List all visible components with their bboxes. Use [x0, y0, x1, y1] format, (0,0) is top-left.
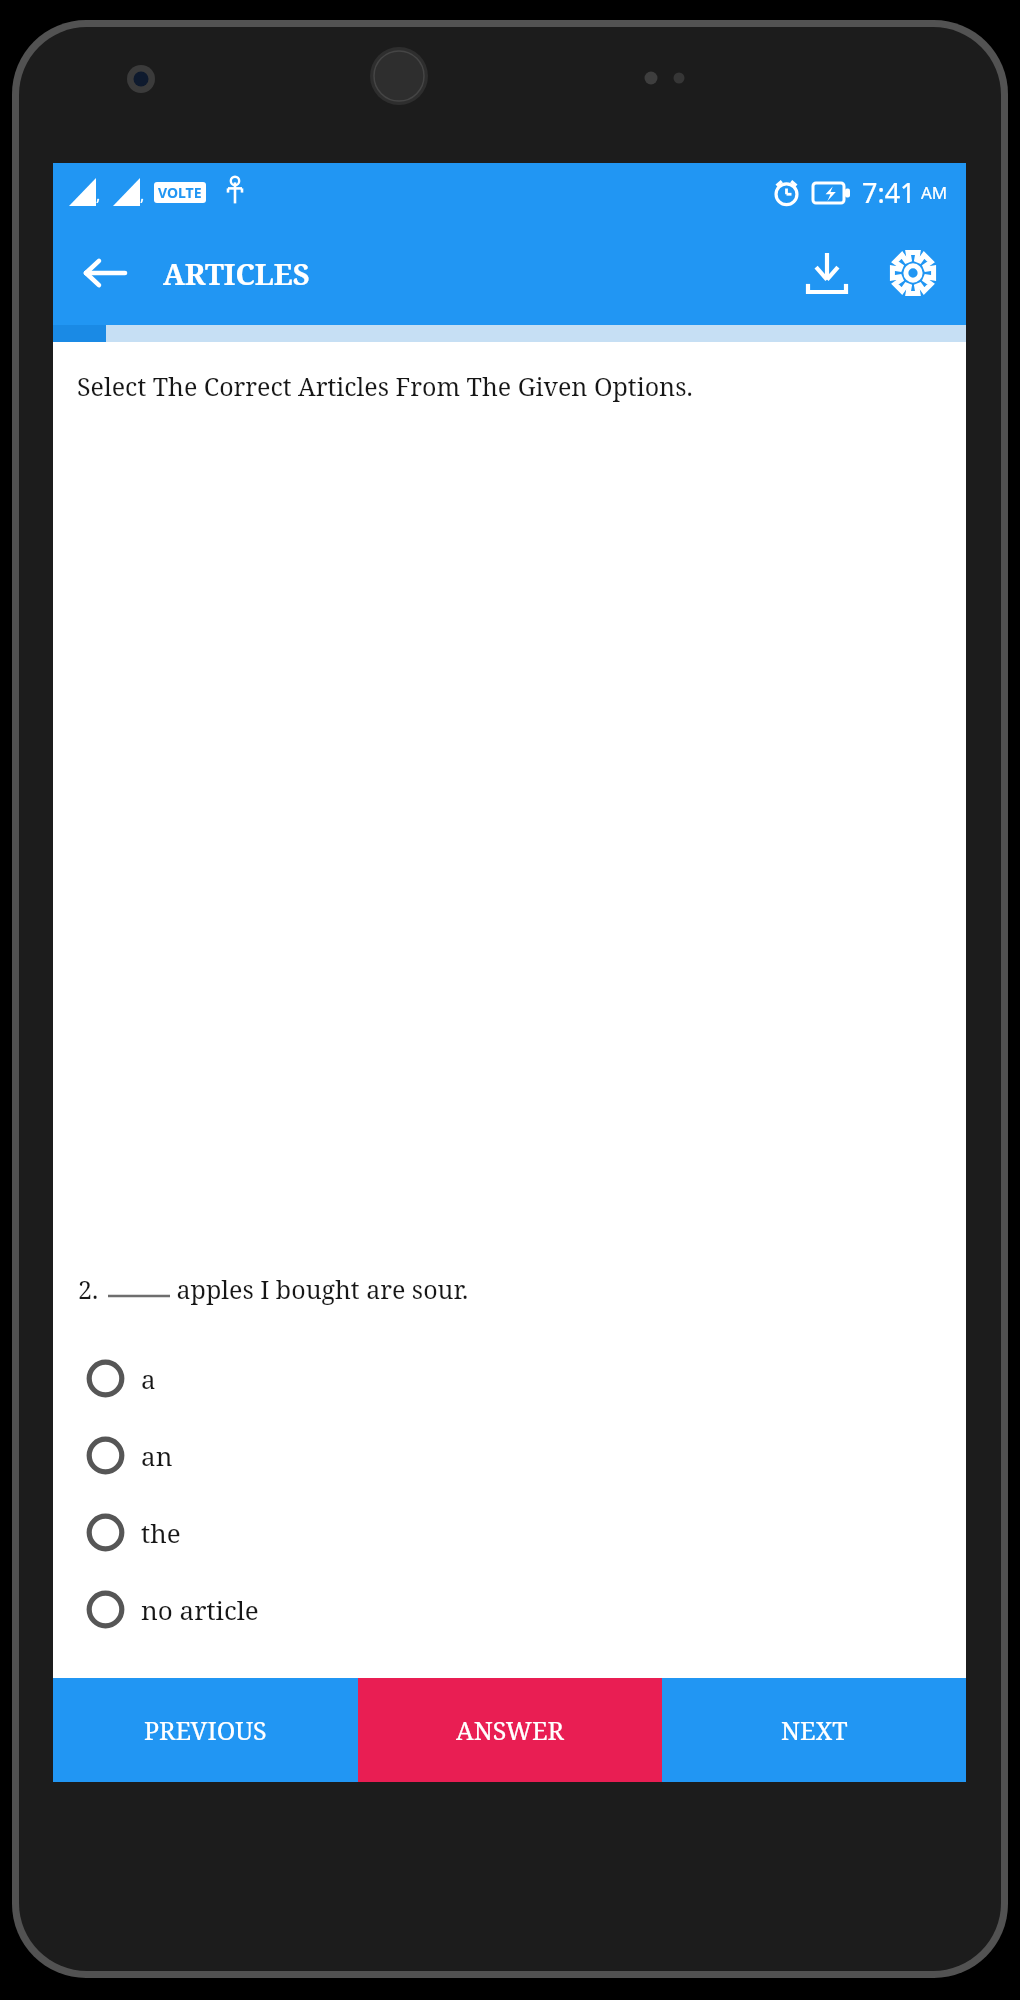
button[interactable]: an [53, 1417, 966, 1494]
button[interactable]: Back [67, 236, 141, 310]
staticText: 2. [78, 1272, 99, 1306]
staticText: apples I bought are sour. [170, 1272, 469, 1306]
staticText: no article [141, 1592, 259, 1627]
staticText: VOLTE [158, 183, 202, 202]
button[interactable]: Download [788, 234, 866, 312]
staticText: AM [921, 181, 948, 204]
staticText: an [141, 1438, 173, 1473]
staticText: 7:41 [862, 174, 916, 211]
staticText: , [140, 184, 145, 206]
button[interactable]: Settings [874, 234, 952, 312]
staticText: the [141, 1515, 181, 1550]
button[interactable]: the [53, 1494, 966, 1571]
staticText: PREVIOUS [144, 1713, 267, 1747]
button[interactable]: PREVIOUS [53, 1678, 358, 1782]
staticText: ANSWER [456, 1713, 564, 1747]
button[interactable]: ANSWER [358, 1678, 662, 1782]
button[interactable]: NEXT [662, 1678, 966, 1782]
staticText: Select The Correct Articles From The Giv… [77, 369, 693, 403]
staticText: NEXT [781, 1713, 848, 1747]
staticText: , [96, 184, 101, 206]
staticText: ARTICLES [163, 254, 310, 293]
staticText: a [141, 1361, 156, 1396]
button[interactable]: no article [53, 1571, 966, 1648]
button[interactable]: a [53, 1340, 966, 1417]
